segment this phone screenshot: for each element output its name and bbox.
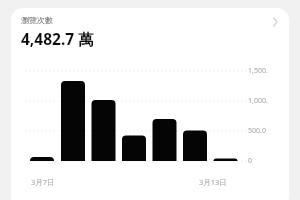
button[interactable]: View details (268, 15, 282, 29)
button[interactable]: 瀏覽次數 (11, 8, 289, 48)
staticText: 1,000. (248, 96, 268, 106)
staticText: 3月13日 (199, 177, 227, 187)
staticText: 1,500. (248, 66, 268, 76)
staticText: 0 (248, 156, 253, 166)
staticText: 500.0 (248, 126, 266, 136)
staticText: 瀏覽次數 (21, 15, 53, 25)
staticText: 4,482.7 萬 (21, 28, 94, 48)
staticText: 3月7日 (31, 177, 55, 187)
